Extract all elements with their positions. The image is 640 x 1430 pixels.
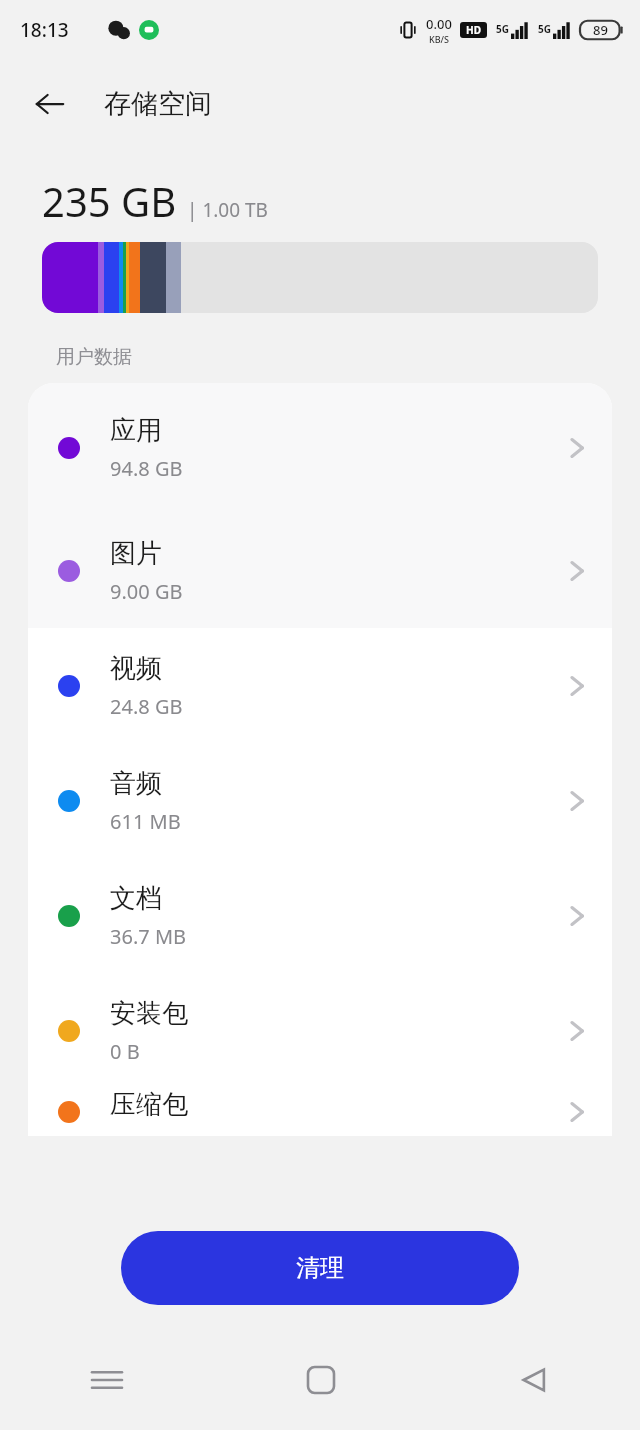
staticText: HD: [466, 23, 481, 37]
button[interactable]: Home: [214, 1330, 427, 1430]
button[interactable]: 应用: [28, 383, 612, 513]
button[interactable]: Recents: [0, 1330, 214, 1430]
staticText: 用户数据: [56, 345, 132, 369]
staticText: | 1.00 TB: [187, 197, 268, 223]
button[interactable]: 图片: [28, 513, 612, 628]
button[interactable]: 文档: [28, 858, 612, 973]
staticText: 视频: [110, 652, 162, 685]
staticText: 文档: [110, 882, 162, 915]
staticText: 0 B: [110, 1038, 140, 1065]
staticText: 24.8 GB: [110, 693, 183, 720]
button[interactable]: Back: [427, 1330, 640, 1430]
staticText: 89: [593, 21, 608, 39]
staticText: 压缩包: [110, 1088, 188, 1121]
staticText: 611 MB: [110, 808, 181, 835]
button[interactable]: 视频: [28, 628, 612, 743]
staticText: 36.7 MB: [110, 923, 187, 950]
button[interactable]: 安装包: [28, 973, 612, 1088]
staticText: 图片: [110, 537, 162, 570]
staticText: KB/S: [429, 33, 449, 45]
staticText: 0.00: [426, 15, 452, 33]
staticText: 安装包: [110, 997, 188, 1030]
button[interactable]: 压缩包: [28, 1088, 612, 1136]
button[interactable]: 音频: [28, 743, 612, 858]
staticText: 清理: [296, 1253, 344, 1283]
staticText: 音频: [110, 767, 162, 800]
button[interactable]: 清理: [121, 1231, 519, 1305]
staticText: 应用: [110, 414, 162, 447]
staticText: 5G: [538, 22, 551, 36]
staticText: 94.8 GB: [110, 455, 183, 482]
staticText: 存储空间: [104, 87, 212, 121]
staticText: 9.00 GB: [110, 578, 183, 605]
staticText: 235 GB: [42, 174, 177, 228]
button[interactable]: Back: [24, 78, 76, 130]
staticText: 5G: [496, 22, 509, 36]
staticText: 18:13: [20, 17, 69, 43]
